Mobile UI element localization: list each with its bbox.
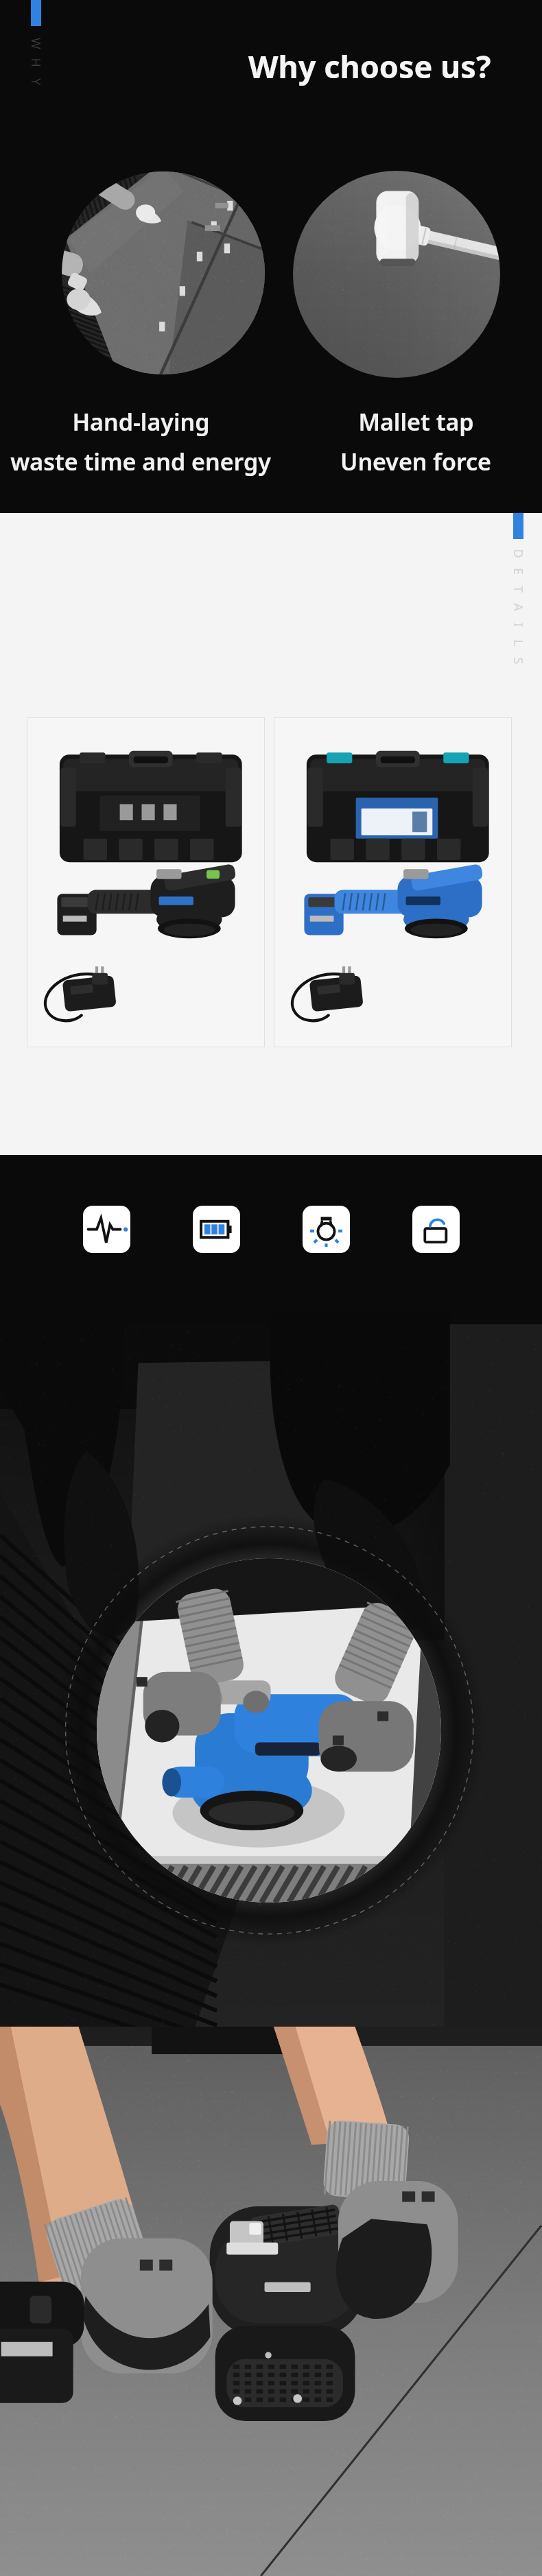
staticText: waste time and energy [10, 446, 271, 477]
staticText: D [509, 549, 527, 559]
button[interactable]: Anti vibration [83, 1206, 130, 1253]
staticText: I [510, 623, 527, 628]
staticText: H [27, 58, 44, 68]
staticText: T [510, 586, 527, 593]
staticText: Y [27, 78, 45, 86]
staticText: W [27, 38, 45, 49]
button[interactable]: LED light [303, 1206, 350, 1253]
staticText: E [510, 568, 527, 575]
staticText: Uneven force [340, 446, 491, 477]
staticText: L [509, 640, 527, 646]
staticText: Why choose us? [248, 45, 491, 87]
staticText: Hand-laying [72, 406, 210, 438]
button[interactable]: Long battery life [193, 1206, 240, 1253]
staticText: Mallet tap [358, 406, 474, 438]
button[interactable]: Safety lock [412, 1206, 460, 1253]
staticText: S [509, 657, 527, 664]
staticText: A [509, 603, 527, 611]
